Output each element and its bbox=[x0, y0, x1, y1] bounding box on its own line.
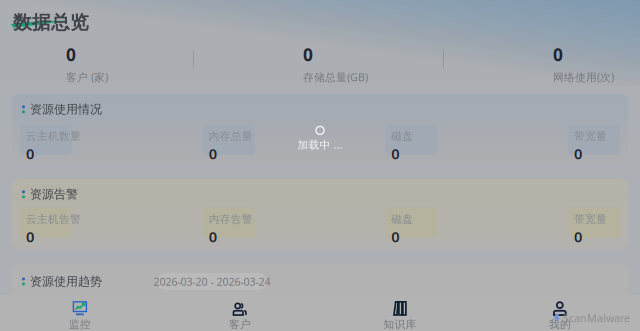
button[interactable]: 2026-03-20 - 2026-03-24 bbox=[157, 273, 267, 290]
staticText: 带宽量 bbox=[574, 213, 607, 226]
staticText: 0 bbox=[209, 144, 217, 163]
staticText: 加载中 ... bbox=[297, 137, 342, 152]
staticText: 云主机告警 bbox=[26, 213, 81, 226]
staticText: 数据总览 bbox=[13, 11, 89, 34]
button[interactable]: 客户 bbox=[160, 295, 320, 331]
staticText: 0 bbox=[26, 144, 34, 163]
button[interactable]: 知识库 bbox=[320, 295, 480, 331]
staticText: 0 bbox=[391, 144, 399, 163]
staticText: 云主机数量 bbox=[26, 130, 81, 143]
staticText: 0 bbox=[66, 43, 76, 66]
staticText: 存储总量(GB) bbox=[303, 70, 368, 84]
staticText: 网络使用(次) bbox=[553, 70, 614, 84]
staticText: 磁盘 bbox=[391, 130, 413, 143]
staticText: 0 bbox=[574, 144, 582, 163]
staticText: 客户 bbox=[229, 318, 251, 331]
staticText: ScanMalware bbox=[563, 311, 630, 325]
staticText: 2026-03-20 - 2026-03-24 bbox=[153, 274, 270, 289]
button[interactable]: 监控 bbox=[0, 295, 160, 331]
button[interactable]: 我的 bbox=[480, 295, 640, 331]
staticText: 知识库 bbox=[383, 318, 416, 331]
staticText: 资源告警 bbox=[30, 187, 78, 202]
staticText: 0 bbox=[303, 43, 313, 66]
staticText: 0 bbox=[391, 227, 399, 246]
staticText: 资源使用趋势 bbox=[30, 274, 102, 289]
staticText: 带宽量 bbox=[574, 130, 607, 143]
staticText: 内存总量 bbox=[209, 130, 253, 143]
staticText: 内存告警 bbox=[209, 213, 253, 226]
staticText: 磁盘 bbox=[391, 213, 413, 226]
staticText: 我的 bbox=[549, 318, 571, 331]
staticText: 监控 bbox=[69, 318, 91, 331]
staticText: 0 bbox=[209, 227, 217, 246]
staticText: 0 bbox=[26, 227, 34, 246]
staticText: 资源使用情况 bbox=[30, 102, 102, 117]
staticText: 0 bbox=[574, 227, 582, 246]
staticText: 客户 (家) bbox=[66, 70, 108, 84]
staticText: 0 bbox=[553, 43, 563, 66]
